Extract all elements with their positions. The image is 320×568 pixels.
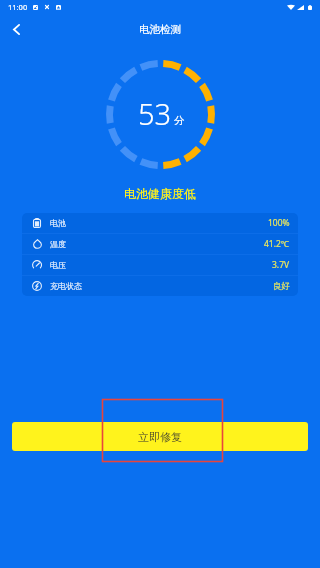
staticText: 53 — [138, 94, 172, 133]
button[interactable]: Back — [0, 18, 33, 40]
button[interactable]: 立即修复 — [12, 422, 308, 451]
staticText: 电压 — [50, 260, 66, 270]
staticText: 电池健康度低 — [124, 186, 196, 201]
button[interactable]: 充电状态 — [32, 276, 290, 296]
staticText: 立即修复 — [138, 430, 182, 444]
staticText: 分 — [174, 114, 185, 127]
staticText: 温度 — [50, 239, 66, 249]
staticText: 11:00 — [8, 2, 28, 12]
button[interactable]: 电池 — [32, 213, 290, 233]
staticText: 充电状态 — [50, 281, 82, 291]
staticText: 3.7V — [272, 259, 290, 271]
staticText: 电池检测 — [139, 23, 181, 36]
button[interactable]: 温度 — [32, 234, 290, 254]
staticText: 电池 — [50, 218, 66, 228]
staticText: 良好 — [273, 281, 290, 292]
button[interactable]: 电压 — [32, 255, 290, 275]
staticText: 100% — [268, 217, 290, 229]
staticText: 41.2℃ — [264, 238, 290, 250]
